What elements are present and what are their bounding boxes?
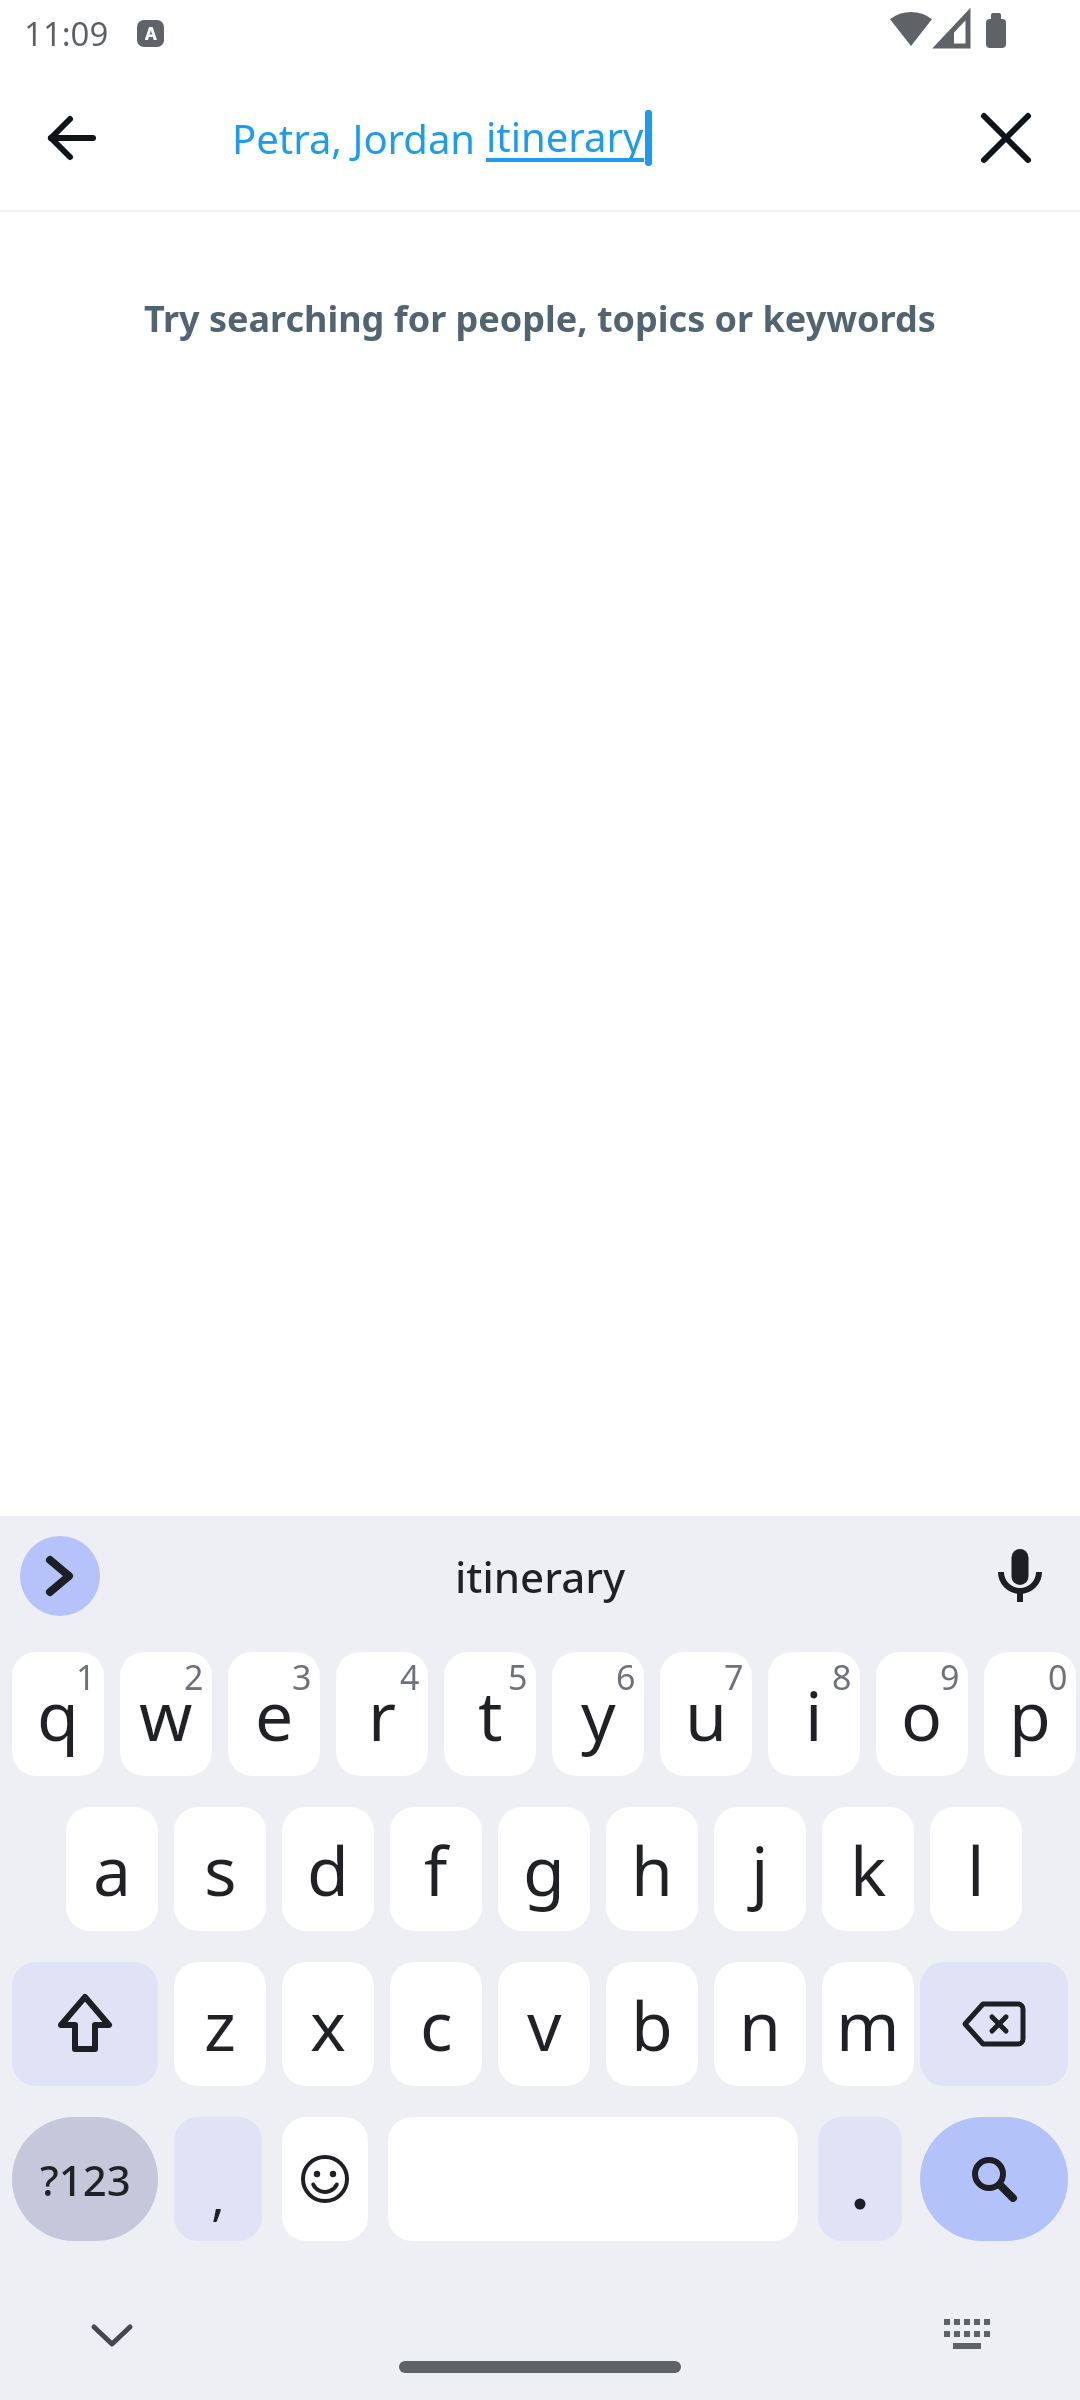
staticText: l xyxy=(967,1823,985,1916)
button[interactable]: c xyxy=(390,1962,482,2086)
button[interactable]: j xyxy=(714,1807,806,1931)
staticText: d xyxy=(307,1823,349,1916)
button[interactable]: d xyxy=(282,1807,374,1931)
button[interactable]: , xyxy=(174,2117,262,2241)
button[interactable]: v xyxy=(498,1962,590,2086)
button[interactable]: x xyxy=(282,1962,374,2086)
button[interactable]: ?123 xyxy=(12,2117,158,2241)
staticText: 5 xyxy=(508,1654,528,1700)
button[interactable] xyxy=(818,2117,902,2241)
staticText: 11:09 xyxy=(24,11,109,56)
button[interactable]: h xyxy=(606,1807,698,1931)
staticText: m xyxy=(836,1978,900,2071)
staticText: k xyxy=(850,1823,887,1916)
button[interactable]: k xyxy=(822,1807,914,1931)
staticText: 9 xyxy=(940,1654,960,1700)
staticText: y xyxy=(581,1668,616,1761)
staticText: h xyxy=(631,1823,674,1916)
staticText: j xyxy=(751,1823,769,1916)
staticText: p xyxy=(1009,1668,1051,1761)
staticText: f xyxy=(424,1823,448,1916)
button[interactable]: f xyxy=(390,1807,482,1931)
button[interactable] xyxy=(20,1536,100,1616)
button[interactable]: z xyxy=(174,1962,266,2086)
staticText: t xyxy=(478,1668,503,1761)
staticText: o xyxy=(901,1668,943,1761)
staticText: r xyxy=(368,1668,397,1761)
staticText: c xyxy=(420,1978,453,2071)
staticText: 8 xyxy=(832,1654,852,1700)
button[interactable]: g xyxy=(498,1807,590,1931)
staticText: itinerary xyxy=(486,109,644,163)
button[interactable]: a xyxy=(66,1807,158,1931)
button[interactable]: t xyxy=(444,1652,536,1776)
button[interactable]: l xyxy=(930,1807,1022,1931)
staticText: e xyxy=(255,1668,294,1761)
staticText: Try searching for people, topics or keyw… xyxy=(144,294,936,343)
button[interactable]: itinerary xyxy=(455,1548,626,1605)
button[interactable] xyxy=(12,1962,158,2086)
button[interactable]: i xyxy=(768,1652,860,1776)
staticText: g xyxy=(523,1823,565,1916)
staticText: u xyxy=(685,1668,728,1761)
staticText: s xyxy=(204,1823,237,1916)
staticText: 4 xyxy=(400,1654,420,1700)
button[interactable]: u xyxy=(660,1652,752,1776)
staticText: 2 xyxy=(184,1654,204,1700)
staticText: 6 xyxy=(616,1654,636,1700)
staticText: i xyxy=(805,1668,823,1761)
staticText: a xyxy=(93,1823,132,1916)
button[interactable]: r xyxy=(336,1652,428,1776)
staticText: q xyxy=(37,1668,79,1761)
button[interactable]: e xyxy=(228,1652,320,1776)
button[interactable] xyxy=(992,1548,1048,1604)
staticText: n xyxy=(739,1978,782,2071)
button[interactable]: m xyxy=(822,1962,914,2086)
staticText: ?123 xyxy=(40,2151,131,2208)
staticText: 7 xyxy=(724,1654,744,1700)
button[interactable] xyxy=(0,66,144,210)
staticText: w xyxy=(139,1668,193,1761)
button[interactable] xyxy=(920,1962,1068,2086)
button[interactable] xyxy=(920,2117,1068,2241)
button[interactable]: b xyxy=(606,1962,698,2086)
staticText: , xyxy=(211,2159,225,2230)
staticText: 0 xyxy=(1048,1654,1068,1700)
staticText: v xyxy=(527,1978,562,2071)
button[interactable] xyxy=(932,66,1080,210)
button[interactable]: s xyxy=(174,1807,266,1931)
staticText: 1 xyxy=(76,1654,96,1700)
button[interactable] xyxy=(282,2117,368,2241)
button[interactable]: n xyxy=(714,1962,806,2086)
staticText: Petra, Jordan xyxy=(232,111,486,165)
button[interactable]: o xyxy=(876,1652,968,1776)
button[interactable]: w xyxy=(120,1652,212,1776)
staticText: z xyxy=(204,1978,236,2071)
staticText: x xyxy=(310,1978,346,2071)
staticText: A xyxy=(145,22,157,45)
button[interactable]: y xyxy=(552,1652,644,1776)
button[interactable]: p xyxy=(984,1652,1076,1776)
staticText: b xyxy=(631,1978,673,2071)
staticText: 3 xyxy=(292,1654,312,1700)
button[interactable]: q xyxy=(12,1652,104,1776)
